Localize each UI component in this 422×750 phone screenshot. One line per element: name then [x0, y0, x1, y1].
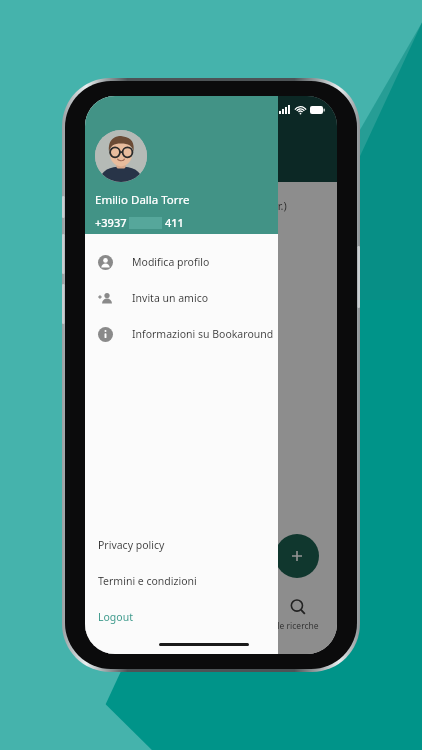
button[interactable]: Invita un amico: [85, 280, 278, 316]
button[interactable]: Privacy policy: [85, 536, 278, 554]
button[interactable]: Logout: [85, 608, 278, 626]
staticText: Logout: [98, 610, 133, 624]
staticText: or.): [271, 198, 287, 213]
staticText: 411: [165, 215, 184, 230]
button[interactable]: Aggiungi: [275, 534, 319, 578]
staticText: Privacy policy: [98, 538, 165, 552]
staticText: Termini e condizioni: [98, 574, 197, 588]
button[interactable]: le ricerche: [267, 598, 329, 632]
staticText: Informazioni su Bookaround: [132, 327, 274, 341]
staticText: Modifica profilo: [132, 255, 210, 269]
staticText: le ricerche: [277, 620, 319, 632]
staticText: +3937: [95, 215, 127, 230]
staticText: Emilio Dalla Torre: [95, 192, 190, 208]
button[interactable]: Informazioni su Bookaround: [85, 316, 278, 352]
button[interactable]: Termini e condizioni: [85, 572, 278, 590]
button[interactable]: Modifica profilo: [85, 244, 278, 280]
staticText: Invita un amico: [132, 291, 209, 305]
